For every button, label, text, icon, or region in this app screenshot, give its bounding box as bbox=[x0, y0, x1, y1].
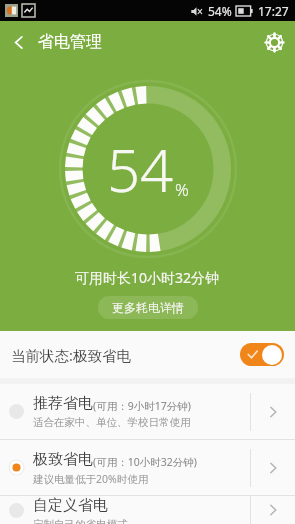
staticText: 适合在家中、单位、学校日常使用 bbox=[33, 416, 191, 429]
button[interactable]: Open details bbox=[251, 384, 295, 439]
button[interactable]: 推荐省电 bbox=[0, 384, 295, 439]
staticText: 建议电量低于20%时使用 bbox=[33, 472, 149, 486]
staticText: 可用时长10小时32分钟 bbox=[75, 268, 220, 287]
staticText: % bbox=[175, 178, 189, 201]
staticText: 17:27 bbox=[258, 3, 289, 19]
staticText: 更多耗电详情 bbox=[112, 300, 184, 315]
staticText: 省电管理 bbox=[38, 32, 102, 52]
staticText: 54 bbox=[107, 130, 174, 209]
staticText: 当前状态:极致省电 bbox=[11, 345, 131, 365]
button[interactable]: Settings bbox=[254, 22, 295, 63]
button[interactable]: Open details bbox=[251, 496, 295, 524]
button[interactable]: 当前状态:极致省电 bbox=[0, 331, 295, 378]
button[interactable]: 自定义省电 bbox=[0, 496, 295, 524]
button[interactable]: Back bbox=[0, 27, 35, 58]
button[interactable]: 极致省电 bbox=[0, 440, 295, 495]
button[interactable]: 更多耗电详情 bbox=[98, 296, 198, 319]
button[interactable]: Open details bbox=[251, 440, 295, 495]
staticText: 极致省电 bbox=[33, 450, 93, 469]
staticText: 自定义省电 bbox=[33, 496, 108, 515]
staticText: (可用：9小时17分钟) bbox=[93, 399, 191, 413]
staticText: 定制自己的省电模式 bbox=[33, 518, 128, 524]
staticText: (可用：10小时32分钟) bbox=[93, 455, 197, 469]
staticText: 推荐省电 bbox=[33, 394, 93, 413]
staticText: 54% bbox=[208, 3, 232, 19]
other: Power saving toggle bbox=[240, 343, 284, 366]
